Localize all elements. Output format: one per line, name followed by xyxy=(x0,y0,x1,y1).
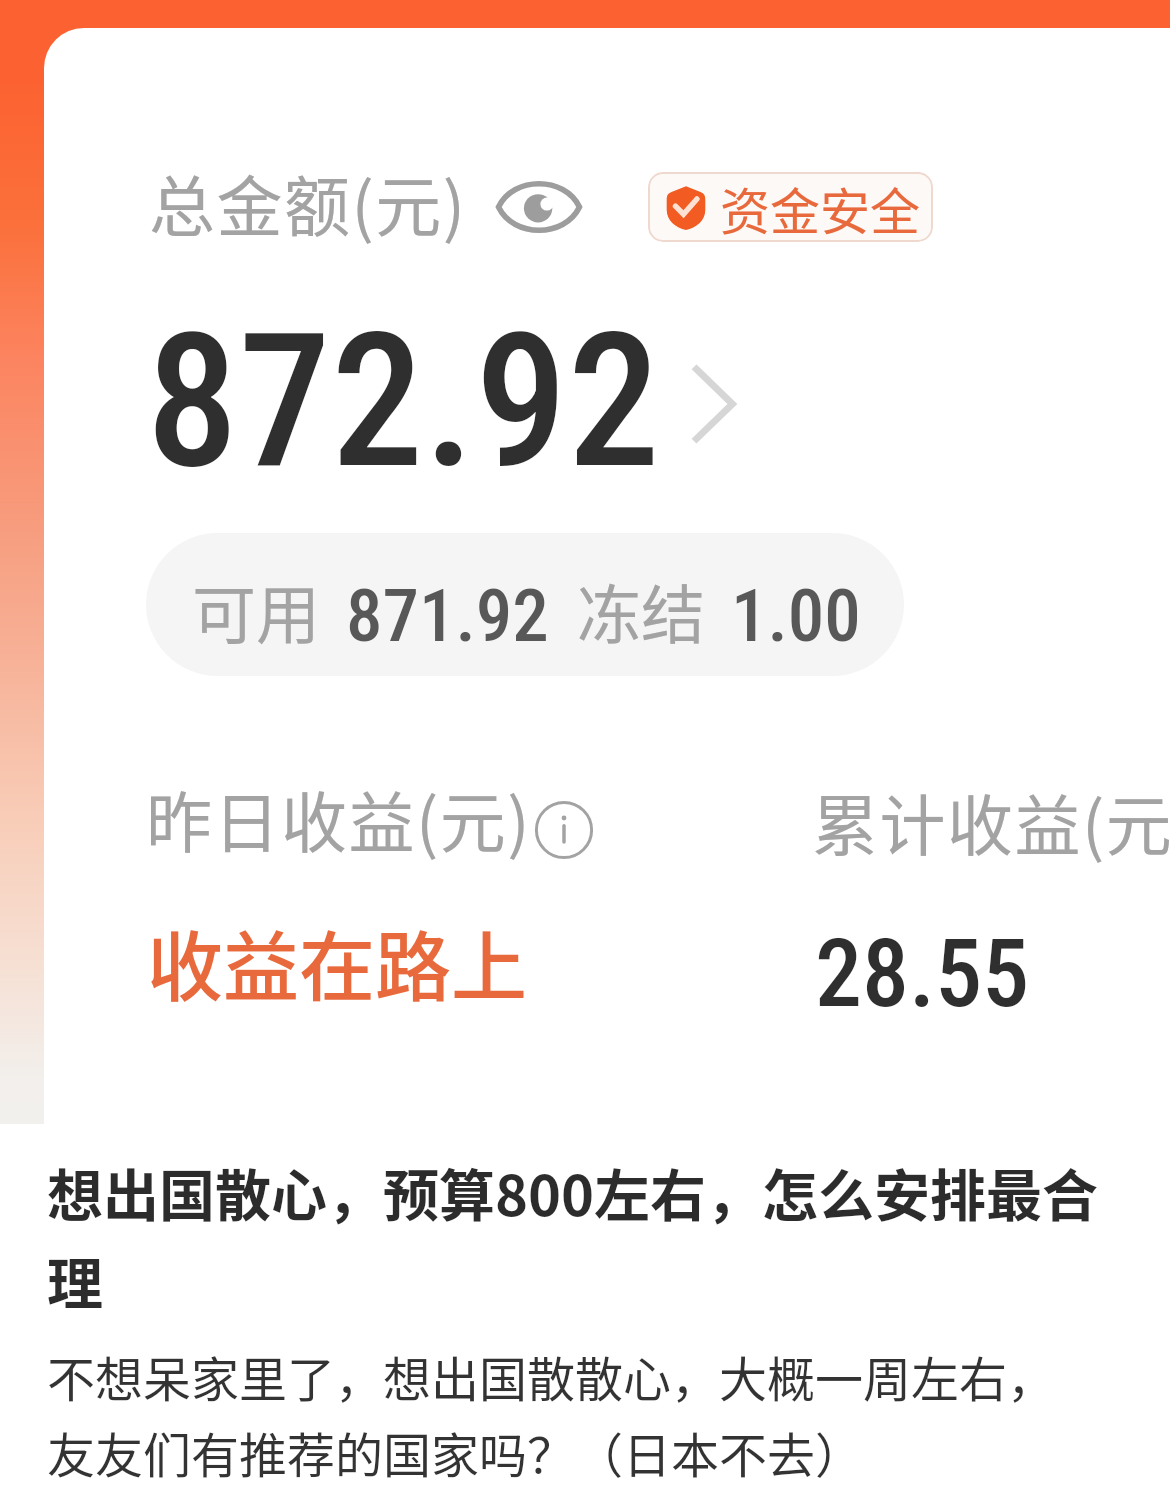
button[interactable]: 资金安全 xyxy=(648,172,933,242)
button[interactable]: Toggle amount visibility xyxy=(485,164,593,250)
staticText: 累计收益(元) xyxy=(812,794,1170,864)
staticText: 可用 xyxy=(192,584,320,652)
button[interactable]: 想出国散心，预算800左右，怎么安排最合理 xyxy=(47,1146,1123,1488)
staticText: 冻结 xyxy=(577,584,705,652)
staticText: 28.55 xyxy=(815,919,1030,1029)
button[interactable]: 昨日收益(元) xyxy=(140,780,700,1030)
button[interactable]: 累计收益(元) xyxy=(806,780,1170,1030)
staticText: 不想呆家里了，想出国散散心，大概一周左右，友友们有推荐的国家吗？（日本不去） xyxy=(47,1336,1087,1488)
button[interactable]: 可用 xyxy=(146,533,904,676)
staticText: 872.92 xyxy=(146,315,660,505)
button[interactable]: 872.92 xyxy=(146,315,737,505)
button[interactable]: Info about yesterday's earnings xyxy=(534,800,594,860)
staticText: 昨日收益(元) xyxy=(146,791,532,861)
staticText: 总金额(元) xyxy=(149,175,467,245)
staticText: 收益在路上 xyxy=(147,931,527,1011)
staticText: 871.92 xyxy=(346,578,549,658)
staticText: 1.00 xyxy=(731,578,861,658)
staticText: 想出国散心，预算800左右，怎么安排最合理 xyxy=(47,1146,1123,1322)
staticText: 资金安全 xyxy=(720,172,920,242)
